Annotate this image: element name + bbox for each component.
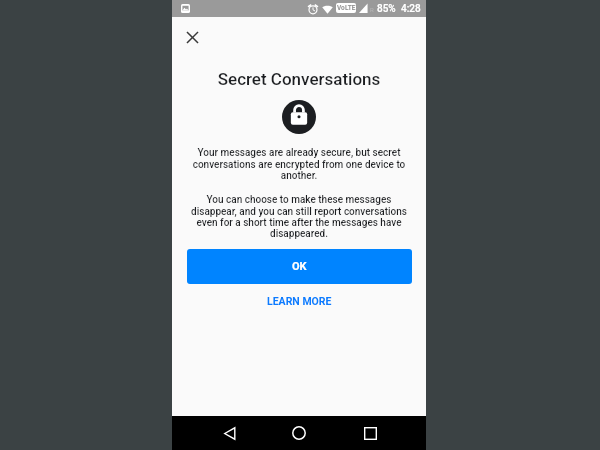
button[interactable]: LEARN MORE xyxy=(257,290,342,312)
button[interactable]: Back xyxy=(212,416,246,450)
staticText: You can choose to make these messages di… xyxy=(187,194,411,239)
staticText: LTE xyxy=(345,4,356,12)
staticText: Your messages are already secure, but se… xyxy=(187,147,411,181)
button[interactable]: OK xyxy=(187,249,412,284)
button[interactable]: Home xyxy=(282,416,316,450)
staticText: 4:28 xyxy=(401,3,421,15)
staticText: R xyxy=(370,6,374,13)
staticText: Secret Conversations xyxy=(172,69,426,89)
staticText: Vo xyxy=(337,4,345,12)
button[interactable]: Recent apps xyxy=(353,416,387,450)
button[interactable]: Close xyxy=(176,21,209,54)
staticText: LEARN MORE xyxy=(267,295,332,307)
staticText: OK xyxy=(292,260,307,273)
staticText: 85% xyxy=(377,3,396,15)
